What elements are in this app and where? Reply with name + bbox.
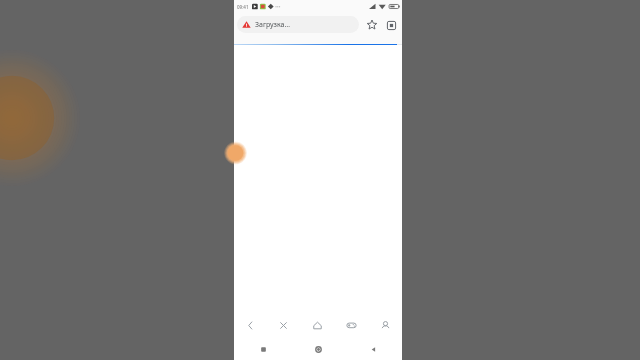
button[interactable]: Back [363,339,383,359]
button[interactable]: Back [234,312,267,338]
button[interactable]: Home [308,339,328,359]
button[interactable]: Stop loading [267,312,300,338]
button[interactable]: Recent apps [253,339,273,359]
button[interactable]: Tabs [383,17,399,33]
button[interactable]: Загрузка… [237,16,359,33]
button[interactable]: Profile [368,312,402,338]
button[interactable]: Home [300,312,334,338]
button[interactable]: Bookmark [364,17,380,33]
staticText: 09:41 [237,4,249,10]
staticText: Загрузка… [255,20,291,30]
button[interactable]: Games [334,312,368,338]
